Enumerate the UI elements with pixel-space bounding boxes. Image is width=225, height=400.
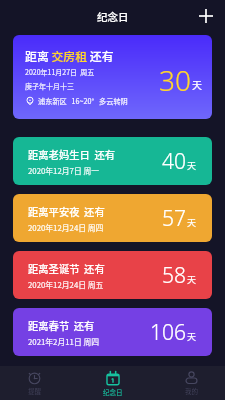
staticText: 庚子年十月十三 [25, 81, 74, 91]
staticText: 2020年12月24日 周五 [28, 279, 104, 290]
staticText: 40 天 [162, 147, 197, 176]
button[interactable]: 提醒 [3, 366, 65, 400]
staticText: 浦东新区 16~20° 多云转阴 [38, 96, 128, 106]
staticText: 2020年12月7日 周一 [28, 165, 100, 176]
staticText: 距离春节 还有 [28, 318, 95, 333]
button[interactable]: Add anniversary [193, 3, 219, 29]
staticText: 58 天 [162, 261, 197, 290]
button[interactable]: 我的 [160, 366, 222, 400]
button[interactable]: 距离老妈生日 还有 [13, 137, 212, 185]
staticText: 2021年2月11日 周四 [28, 336, 100, 347]
staticText: 106 天 [150, 318, 197, 347]
staticText: 2020年11月27日 周五 [25, 67, 95, 77]
staticText: 纪念日 [103, 387, 123, 396]
staticText: 距离老妈生日 还有 [28, 147, 116, 162]
button[interactable]: 距离圣诞节 还有 [13, 251, 212, 299]
button[interactable]: 距离 交房租 还有 [13, 35, 212, 119]
staticText: 距离 交房租 还有 [25, 47, 114, 64]
button[interactable]: 距离平安夜 还有 [13, 194, 212, 242]
staticText: 距离平安夜 还有 [28, 204, 105, 219]
staticText: 57 天 [162, 204, 197, 233]
staticText: 2020年12月24日 周四 [28, 222, 104, 233]
button[interactable]: 距离春节 还有 [13, 308, 212, 356]
staticText: 30 天 [159, 61, 203, 99]
staticText: 我的 [185, 386, 198, 395]
staticText: 纪念日 [97, 9, 129, 24]
button[interactable]: 纪念日 [82, 366, 144, 400]
staticText: 提醒 [28, 386, 41, 395]
staticText: 距离圣诞节 还有 [28, 261, 105, 276]
